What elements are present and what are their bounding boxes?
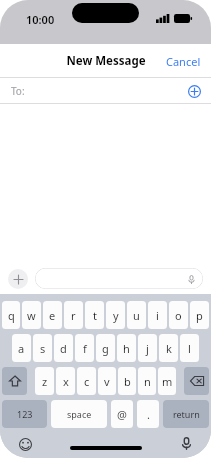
button[interactable]: return bbox=[163, 400, 209, 428]
staticText: New Message bbox=[66, 53, 146, 69]
button[interactable]: i bbox=[148, 301, 167, 329]
staticText: q bbox=[8, 308, 15, 323]
button[interactable]: Cancel bbox=[156, 48, 211, 75]
button[interactable]: Add contact bbox=[185, 82, 203, 100]
button[interactable]: @ bbox=[111, 400, 133, 428]
staticText: . bbox=[147, 407, 150, 422]
button[interactable]: h bbox=[117, 334, 136, 362]
staticText: e bbox=[49, 308, 56, 323]
button[interactable]: Dictation bbox=[176, 433, 196, 453]
staticText: b bbox=[124, 374, 131, 389]
staticText: v bbox=[104, 374, 110, 389]
staticText: n bbox=[144, 374, 151, 389]
button[interactable]: j bbox=[138, 334, 157, 362]
staticText: p bbox=[196, 308, 203, 323]
button[interactable]: z bbox=[35, 367, 54, 395]
button[interactable]: y bbox=[106, 301, 125, 329]
button[interactable]: b bbox=[118, 367, 136, 395]
button[interactable]: Backspace bbox=[184, 367, 209, 395]
button[interactable]: o bbox=[169, 301, 188, 329]
staticText: k bbox=[166, 341, 172, 356]
staticText: 10:00 bbox=[26, 12, 55, 27]
other: Dictate bbox=[186, 274, 196, 284]
button[interactable]: d bbox=[54, 334, 73, 362]
button[interactable]: k bbox=[159, 334, 178, 362]
button[interactable]: 123 bbox=[2, 400, 47, 428]
staticText: x bbox=[63, 374, 69, 389]
button[interactable]: c bbox=[77, 367, 96, 395]
staticText: f bbox=[83, 341, 87, 356]
staticText: Cancel bbox=[166, 54, 201, 69]
button[interactable]: e bbox=[43, 301, 62, 329]
staticText: space bbox=[67, 408, 92, 420]
staticText: return bbox=[173, 408, 200, 420]
button[interactable]: r bbox=[64, 301, 83, 329]
button[interactable]: p bbox=[190, 301, 209, 329]
button[interactable]: Dictate bbox=[35, 268, 203, 289]
staticText: r bbox=[71, 308, 76, 323]
staticText: @ bbox=[117, 407, 127, 422]
staticText: 123 bbox=[17, 408, 33, 420]
staticText: t bbox=[93, 308, 97, 323]
button[interactable]: . bbox=[137, 400, 159, 428]
staticText: m bbox=[162, 374, 173, 389]
button[interactable]: v bbox=[98, 367, 116, 395]
button[interactable]: f bbox=[75, 334, 94, 362]
button[interactable]: l bbox=[180, 334, 199, 362]
staticText: u bbox=[133, 308, 140, 323]
button[interactable]: a bbox=[12, 334, 31, 362]
staticText: d bbox=[60, 341, 67, 356]
staticText: j bbox=[146, 341, 149, 356]
staticText: i bbox=[156, 308, 159, 323]
button[interactable]: m bbox=[158, 367, 176, 395]
staticText: z bbox=[42, 374, 48, 389]
staticText: To: bbox=[11, 84, 25, 98]
staticText: l bbox=[188, 341, 191, 356]
staticText: c bbox=[84, 374, 90, 389]
staticText: a bbox=[18, 341, 25, 356]
button[interactable]: t bbox=[85, 301, 104, 329]
staticText: y bbox=[113, 308, 119, 323]
button[interactable]: x bbox=[56, 367, 75, 395]
button[interactable]: Emoji bbox=[15, 434, 35, 454]
staticText: o bbox=[175, 308, 182, 323]
button[interactable]: g bbox=[96, 334, 115, 362]
staticText: g bbox=[102, 341, 109, 356]
button[interactable]: s bbox=[33, 334, 52, 362]
button[interactable]: q bbox=[2, 301, 20, 329]
button[interactable]: Shift bbox=[2, 367, 27, 395]
button[interactable]: u bbox=[127, 301, 146, 329]
button[interactable]: Add attachment bbox=[8, 269, 28, 289]
button[interactable]: space bbox=[51, 400, 107, 428]
staticText: s bbox=[40, 341, 46, 356]
staticText: w bbox=[27, 308, 36, 323]
button[interactable]: w bbox=[22, 301, 41, 329]
button[interactable]: n bbox=[138, 367, 156, 395]
staticText: h bbox=[123, 341, 130, 356]
